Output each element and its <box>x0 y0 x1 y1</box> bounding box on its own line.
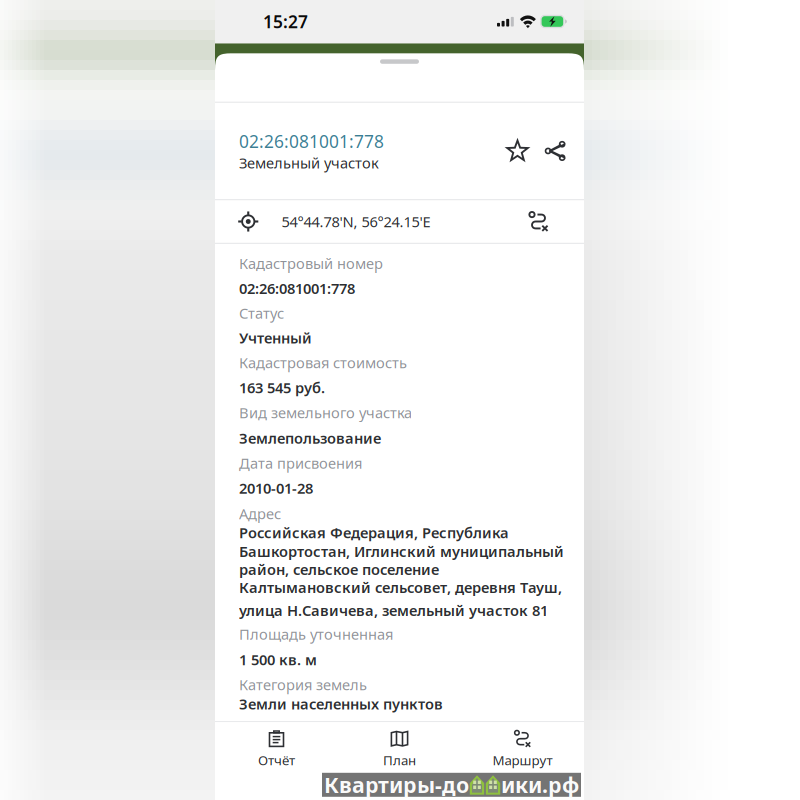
staticText: 1 500 кв. м <box>239 650 317 669</box>
button[interactable]: Отчёт <box>215 722 338 800</box>
staticText: Дата присвоения <box>239 453 362 473</box>
staticText: 02:26:081001:778 <box>239 278 355 298</box>
button[interactable]: Поделиться <box>538 134 572 168</box>
staticText: Калтымановский сельсовет, деревня Тауш, <box>239 577 562 597</box>
staticText: Земельный участок <box>239 153 379 172</box>
staticText: План <box>383 751 416 769</box>
staticText: Землепользование <box>239 428 381 448</box>
staticText: 2010-01-28 <box>239 478 313 498</box>
staticText: Российская Федерация, Республика <box>239 523 509 542</box>
staticText: Кадастровый номер <box>239 254 383 273</box>
staticText: Башкортостан, Иглинский муниципальный <box>239 542 564 561</box>
button[interactable]: План <box>338 722 461 800</box>
staticText: Отчёт <box>258 751 295 769</box>
staticText: Адрес <box>239 504 281 523</box>
staticText: улица Н.Савичева, земельный участок 81 <box>239 601 548 620</box>
staticText: Вид земельного участка <box>239 403 412 422</box>
staticText: ики.рф <box>501 771 579 799</box>
staticText: 163 545 руб. <box>239 378 325 397</box>
staticText: 54°44.78'N, 56°24.15'E <box>281 212 430 231</box>
staticText: Площадь уточненная <box>239 624 393 644</box>
staticText: 15:27 <box>263 10 308 33</box>
button[interactable]: 54°44.78'N, 56°24.15'E <box>215 200 584 243</box>
staticText: Земли населенных пунктов <box>239 694 443 713</box>
staticText: Кадастровая стоимость <box>239 353 407 372</box>
staticText: Квартиры-до <box>324 771 469 799</box>
staticText: Учтенный <box>239 328 312 348</box>
staticText: Маршрут <box>492 751 552 769</box>
button[interactable]: Добавить в избранное <box>500 133 535 168</box>
staticText: район, сельское поселение <box>239 560 439 579</box>
staticText: 02:26:081001:778 <box>239 130 384 153</box>
staticText: Категория земель <box>239 675 367 694</box>
button[interactable]: Маршрут <box>461 722 584 800</box>
staticText: Статус <box>239 303 284 323</box>
